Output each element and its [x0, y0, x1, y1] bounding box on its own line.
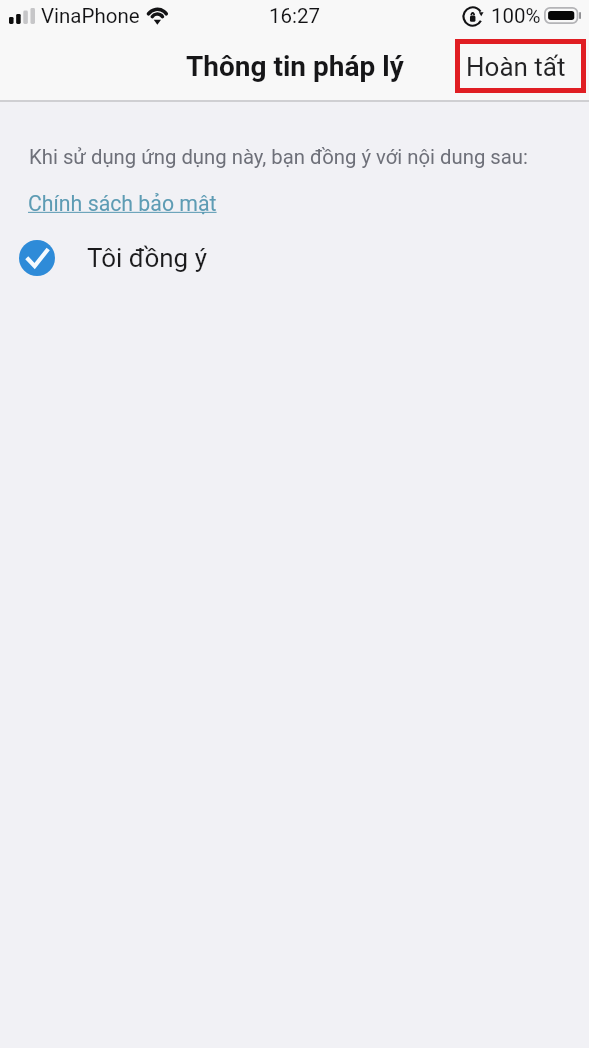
staticText: Khi sử dụng ứng dụng này, bạn đồng ý với… [29, 145, 528, 169]
staticText: VinaPhone [41, 4, 140, 28]
staticText: Hoàn tất [466, 52, 566, 82]
staticText: 100% [491, 4, 541, 28]
button[interactable]: Hoàn tất [455, 39, 586, 93]
other: Wi-Fi [144, 4, 171, 25]
staticText: Chính sách bảo mật [28, 191, 217, 216]
staticText: Thông tin pháp lý [186, 50, 404, 83]
other: Cellular signal [9, 8, 35, 24]
other: Battery full [544, 7, 582, 24]
staticText: Tôi đồng ý [87, 243, 207, 273]
button[interactable]: Chính sách bảo mật [28, 191, 217, 216]
other: Rotation lock [461, 4, 487, 30]
staticText: 16:27 [269, 4, 321, 28]
button[interactable]: Tôi đồng ý [0, 234, 225, 282]
